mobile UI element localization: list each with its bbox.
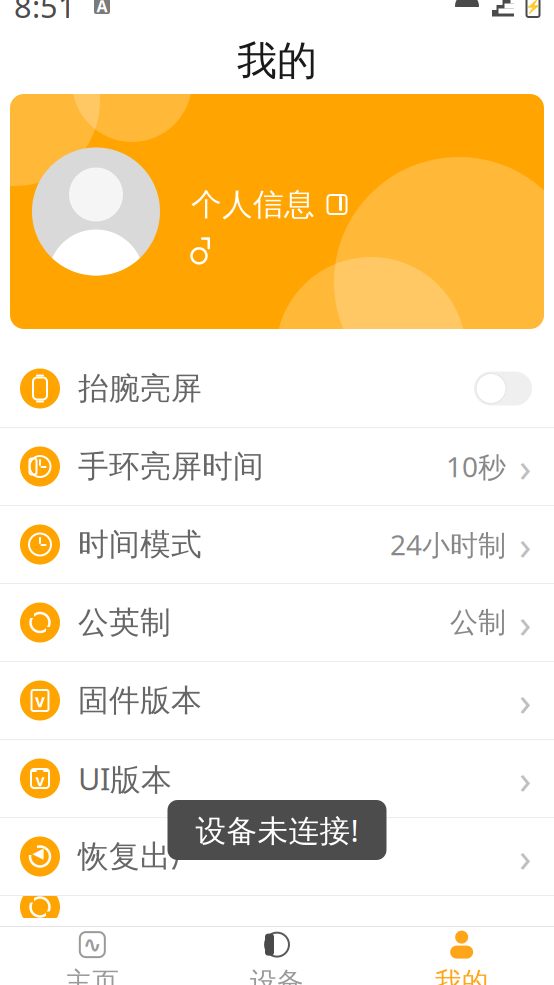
button[interactable]: 个人信息 <box>191 186 349 223</box>
staticText: v <box>35 769 44 791</box>
staticText: A <box>96 0 107 17</box>
button[interactable]: 我的 <box>369 927 554 985</box>
staticText: › <box>519 596 531 649</box>
staticText: 手环亮屏时间 <box>78 448 264 485</box>
staticText: 8:51 <box>14 0 76 26</box>
button[interactable]: v <box>0 662 554 740</box>
staticText: 10秒 <box>446 448 506 485</box>
staticText: ◀ <box>32 845 43 861</box>
staticText: 抬腕亮屏 <box>78 370 202 407</box>
button[interactable]: ◀ <box>0 818 554 896</box>
button[interactable]: 公英制 <box>0 584 554 662</box>
staticText: v <box>35 689 45 712</box>
staticText: 公制 <box>450 605 506 640</box>
staticText: › <box>519 830 531 883</box>
staticText: 个人信息 <box>191 186 315 223</box>
staticText: ∿ <box>83 932 102 957</box>
staticText: UI版本 <box>78 758 172 799</box>
button[interactable]: ∿ <box>0 927 185 985</box>
staticText: 恢复出厂 <box>78 838 202 875</box>
button[interactable]: 抬腕亮屏 <box>0 350 554 428</box>
staticText: 时间模式 <box>78 526 202 563</box>
staticText: 公英制 <box>78 604 171 641</box>
staticText: › <box>519 518 531 571</box>
staticText: 主页 <box>65 966 119 985</box>
staticText: › <box>519 674 531 727</box>
staticText: 设备未连接! <box>195 810 358 850</box>
button[interactable]: 手环亮屏时间 <box>0 428 554 506</box>
staticText: 我的 <box>237 36 317 85</box>
button[interactable]: v <box>0 740 554 818</box>
staticText: › <box>519 752 531 805</box>
staticText: › <box>519 440 531 493</box>
staticText: 24小时制 <box>390 526 506 563</box>
staticText: 我的 <box>435 966 489 985</box>
button[interactable]: 设备 <box>185 927 369 985</box>
button[interactable]: 时间模式 <box>0 506 554 584</box>
staticText: 固件版本 <box>78 682 202 719</box>
staticText: ⚡ <box>524 0 541 14</box>
staticText: 设备 <box>250 966 304 985</box>
